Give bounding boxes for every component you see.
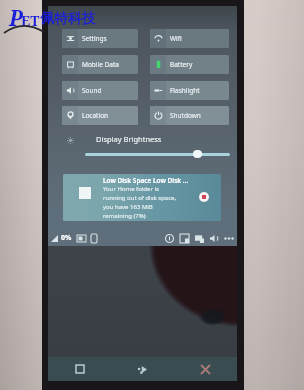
staticText: Display Brightness xyxy=(96,134,162,144)
button[interactable]: Low Disk Space Low Disk ... xyxy=(63,174,221,221)
staticText: Shutdown xyxy=(170,111,201,120)
staticText: 0% xyxy=(61,233,72,243)
button[interactable]: Home xyxy=(48,357,111,381)
button[interactable]: Battery xyxy=(150,55,229,74)
staticText: Mobile Data xyxy=(82,60,119,69)
staticText: Settings xyxy=(82,34,107,43)
button[interactable]: Close xyxy=(174,357,237,381)
button[interactable]: Shutdown xyxy=(150,106,229,125)
button[interactable]: Sound xyxy=(62,81,138,100)
staticText: ET xyxy=(21,11,40,30)
button[interactable]: Location xyxy=(62,106,138,125)
button[interactable]: Wifi xyxy=(150,29,229,48)
staticText: Battery xyxy=(170,60,193,69)
button[interactable]: Recents xyxy=(111,357,174,381)
button[interactable]: Mobile Data xyxy=(62,55,138,74)
staticText: Low Disk Space Low Disk ... xyxy=(103,176,189,185)
staticText: Sound xyxy=(82,86,102,95)
staticText: Location xyxy=(82,111,109,120)
staticText: 佩特科技 xyxy=(40,10,96,28)
staticText: Wifi xyxy=(170,34,182,43)
button[interactable]: Flashlight xyxy=(150,81,229,100)
staticText: Your Home folder is running out of disk … xyxy=(103,185,177,219)
staticText: Flashlight xyxy=(170,86,200,95)
staticText: P xyxy=(9,4,23,33)
button[interactable]: Settings xyxy=(62,29,138,48)
